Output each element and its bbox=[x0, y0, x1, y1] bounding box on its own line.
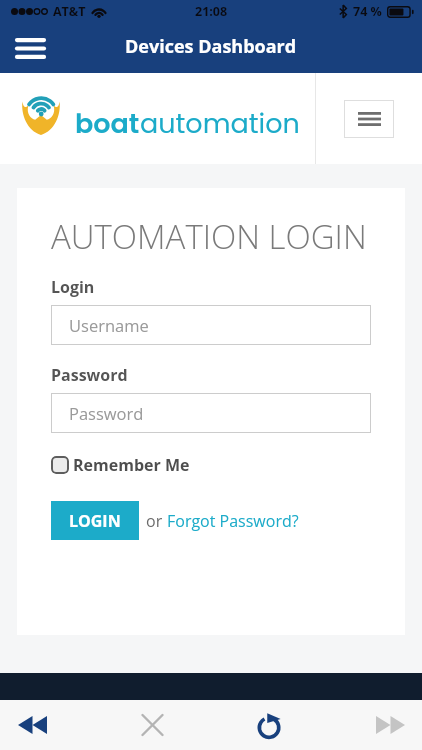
staticText: or bbox=[146, 510, 167, 532]
button[interactable]: Stop bbox=[88, 700, 216, 750]
staticText: AUTOMATION LOGIN bbox=[51, 214, 367, 259]
button[interactable]: Toggle navigation bbox=[344, 100, 394, 138]
staticText: Password bbox=[51, 364, 128, 386]
staticText: 21:08 bbox=[195, 3, 228, 20]
staticText: automation bbox=[140, 105, 300, 143]
button[interactable]: Forward bbox=[341, 700, 422, 750]
button[interactable]: Username bbox=[51, 305, 371, 345]
staticText: Forgot Password? bbox=[167, 510, 299, 532]
staticText: AT&T bbox=[53, 3, 86, 20]
button[interactable]: Forgot Password? bbox=[167, 510, 299, 532]
staticText: Remember Me bbox=[73, 454, 190, 476]
staticText: 74 % bbox=[353, 3, 382, 20]
button[interactable]: Remember Me bbox=[51, 454, 190, 476]
button[interactable]: Back bbox=[0, 700, 64, 750]
button[interactable]: Password bbox=[51, 393, 371, 433]
staticText: Login bbox=[51, 276, 95, 298]
staticText: Devices Dashboard bbox=[125, 34, 297, 59]
staticText: boat bbox=[75, 105, 140, 143]
button[interactable]: Open navigation menu bbox=[6, 24, 54, 72]
staticText: LOGIN bbox=[69, 510, 121, 532]
staticText: Username bbox=[69, 314, 149, 336]
button[interactable]: LOGIN bbox=[51, 501, 139, 540]
button[interactable]: Reload bbox=[216, 700, 324, 750]
staticText: Password bbox=[69, 402, 144, 424]
